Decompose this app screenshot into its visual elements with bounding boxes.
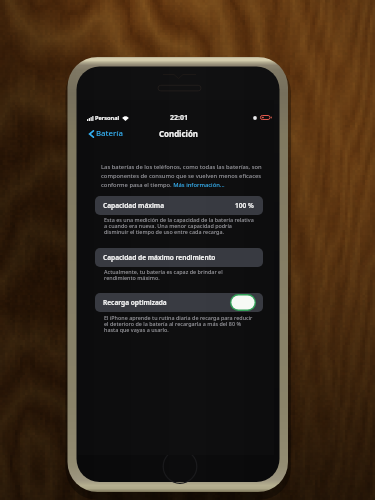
staticText: Personal [95, 114, 120, 122]
staticText: Las baterías de los teléfonos, como toda… [101, 163, 262, 189]
staticText: Actualmente, tu batería es capaz de brin… [104, 268, 254, 281]
staticText: Batería [96, 128, 123, 139]
staticText: 100 % [235, 201, 254, 210]
staticText: El iPhone aprende tu rutina diaria de re… [104, 314, 254, 333]
staticText: Recarga optimizada [103, 298, 167, 307]
staticText: Condición [159, 129, 198, 140]
button[interactable]: Recarga optimizada [95, 293, 263, 312]
button[interactable]: Recarga optimizada [230, 294, 256, 311]
staticText: Esta es una medición de la capacidad de … [104, 216, 254, 235]
staticText: Capacidad máxima [103, 201, 164, 210]
staticText: 22:01 [170, 113, 188, 123]
button[interactable]: Batería [89, 128, 123, 139]
staticText: Capacidad de máximo rendimiento [103, 253, 216, 262]
button[interactable]: Capacidad máxima [95, 196, 263, 215]
button[interactable]: Capacidad de máximo rendimiento [95, 248, 263, 267]
